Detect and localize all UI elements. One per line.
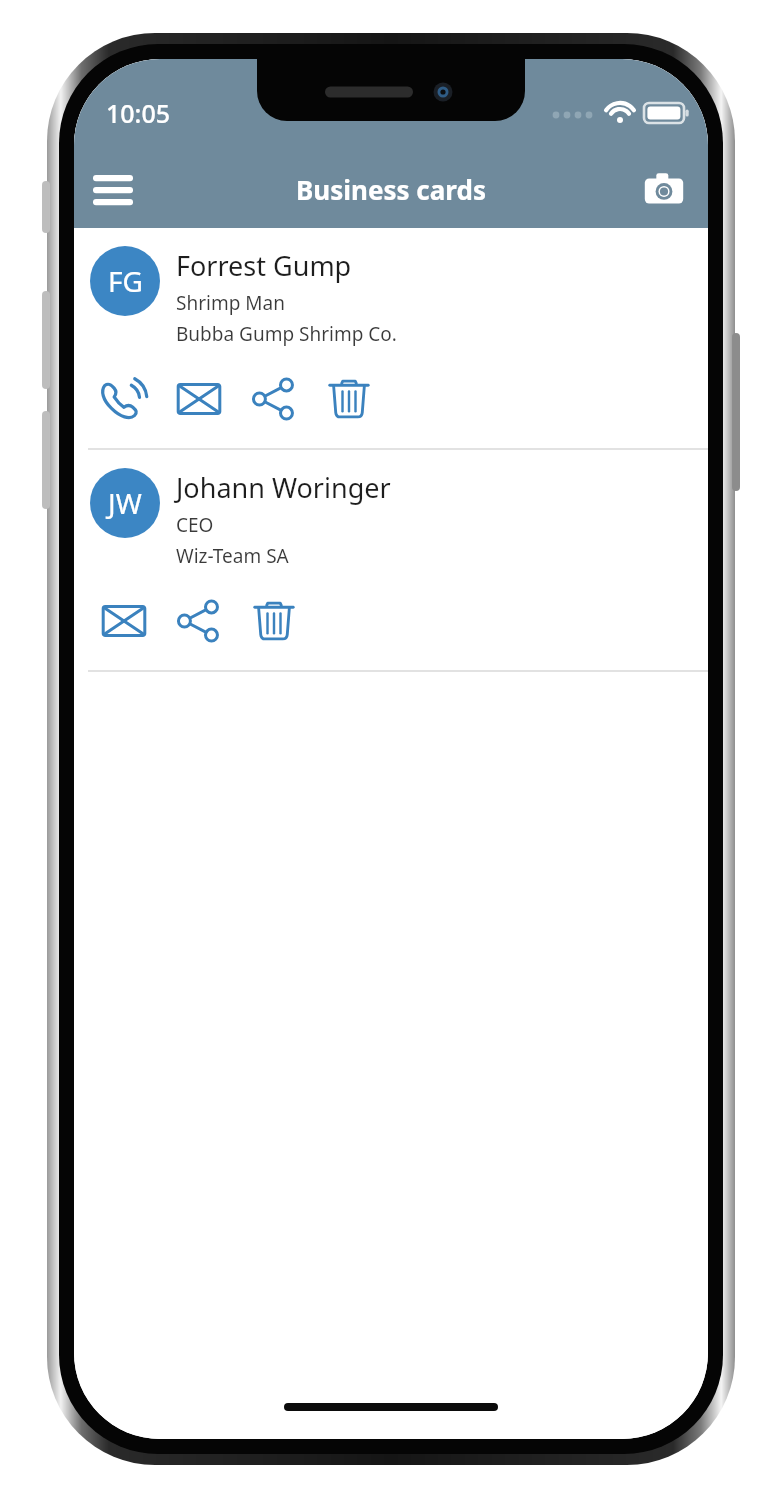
- button[interactable]: Send email: [161, 361, 236, 436]
- staticText: Shrimp Man: [176, 290, 285, 316]
- button[interactable]: Scan business card with camera: [638, 164, 690, 216]
- staticText: Johann Woringer: [176, 469, 391, 506]
- button[interactable]: Call: [86, 361, 161, 436]
- staticText: 10:05: [106, 96, 171, 130]
- button[interactable]: Share contact: [161, 583, 236, 658]
- button[interactable]: Send email: [86, 583, 161, 658]
- button[interactable]: Delete contact: [311, 361, 386, 436]
- button[interactable]: JW: [74, 450, 708, 672]
- staticText: CEO: [176, 512, 214, 538]
- button[interactable]: Open navigation menu: [84, 161, 142, 219]
- staticText: JW: [108, 484, 142, 522]
- staticText: FG: [108, 262, 143, 300]
- button[interactable]: Delete contact: [236, 583, 311, 658]
- staticText: Wiz-Team SA: [176, 543, 289, 569]
- staticText: Business cards: [296, 172, 486, 207]
- button[interactable]: Share contact: [236, 361, 311, 436]
- button[interactable]: FG: [74, 228, 708, 450]
- staticText: Forrest Gump: [176, 247, 352, 284]
- staticText: Bubba Gump Shrimp Co.: [176, 321, 397, 347]
